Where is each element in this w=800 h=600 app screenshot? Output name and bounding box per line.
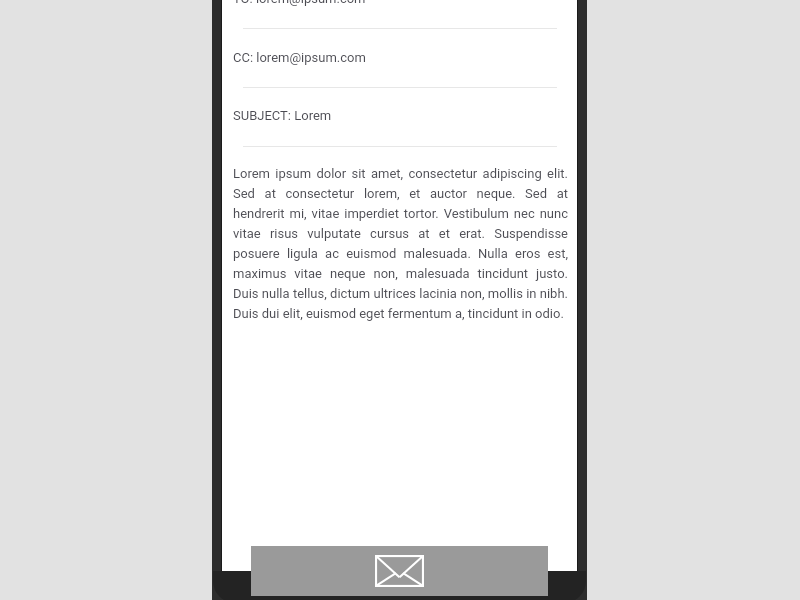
staticText: CC: lorem@ipsum.com bbox=[233, 50, 366, 65]
button[interactable]: Lorem ipsum dolor sit amet, consectetur … bbox=[233, 166, 568, 321]
staticText: SUBJECT: Lorem bbox=[233, 108, 332, 123]
staticText: Lorem ipsum dolor sit amet, consectetur … bbox=[233, 166, 568, 321]
button[interactable]: TO: lorem@ipsum.com bbox=[233, 0, 553, 8]
button[interactable]: Send email bbox=[251, 546, 548, 596]
staticText: TO: lorem@ipsum.com bbox=[233, 0, 366, 6]
button[interactable]: CC: lorem@ipsum.com bbox=[233, 47, 553, 67]
button[interactable]: SUBJECT: Lorem bbox=[233, 105, 553, 125]
